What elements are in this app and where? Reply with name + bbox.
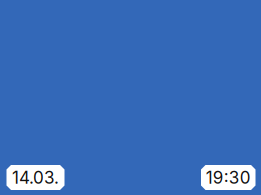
- staticText: 19:30: [206, 167, 251, 188]
- button[interactable]: Time, 19:30: [201, 165, 255, 190]
- button[interactable]: Date, 14.03.: [6, 165, 64, 190]
- staticText: 14.03.: [12, 167, 59, 188]
